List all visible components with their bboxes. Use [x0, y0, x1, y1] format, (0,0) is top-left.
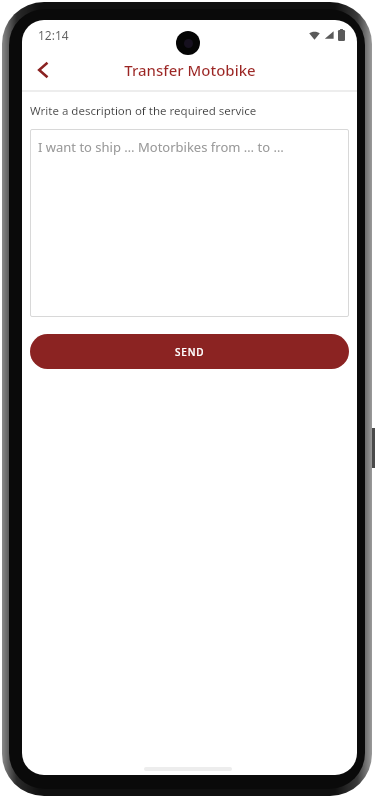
- button[interactable]: I want to ship … Motorbikes from … to …: [30, 129, 349, 317]
- button[interactable]: SEND: [30, 334, 349, 369]
- staticText: Write a description of the required serv…: [30, 103, 257, 119]
- staticText: I want to ship … Motorbikes from … to …: [38, 138, 284, 156]
- staticText: 12:14: [38, 27, 69, 43]
- staticText: Transfer Motobike: [124, 60, 256, 80]
- button[interactable]: Back: [26, 53, 60, 87]
- staticText: SEND: [175, 345, 205, 359]
